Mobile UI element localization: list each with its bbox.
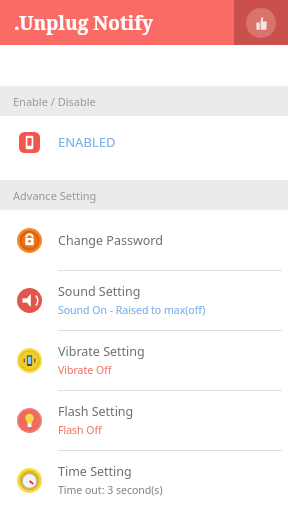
- button[interactable]: Rate this app: [234, 0, 288, 45]
- staticText: Enable / Disable: [13, 94, 96, 109]
- staticText: Vibrate Off: [58, 363, 112, 377]
- staticText: Time Setting: [58, 463, 132, 480]
- button[interactable]: Vibrate Setting: [0, 330, 288, 390]
- staticText: Sound Setting: [58, 283, 141, 300]
- staticText: Flash Off: [58, 423, 102, 437]
- button[interactable]: Change Password: [0, 210, 288, 270]
- staticText: Change Password: [58, 232, 163, 249]
- staticText: Sound On - Raised to max(off): [58, 303, 206, 317]
- button[interactable]: ENABLED: [0, 116, 288, 168]
- staticText: Vibrate Setting: [58, 343, 145, 360]
- staticText: Flash Setting: [58, 403, 134, 420]
- staticText: ENABLED: [58, 133, 116, 151]
- button[interactable]: Time Setting: [0, 450, 288, 510]
- staticText: Time out: 3 second(s): [58, 483, 163, 497]
- staticText: .Unplug Notify: [14, 10, 154, 36]
- staticText: Advance Setting: [13, 188, 97, 203]
- button[interactable]: Flash Setting: [0, 390, 288, 450]
- button[interactable]: Sound Setting: [0, 270, 288, 330]
